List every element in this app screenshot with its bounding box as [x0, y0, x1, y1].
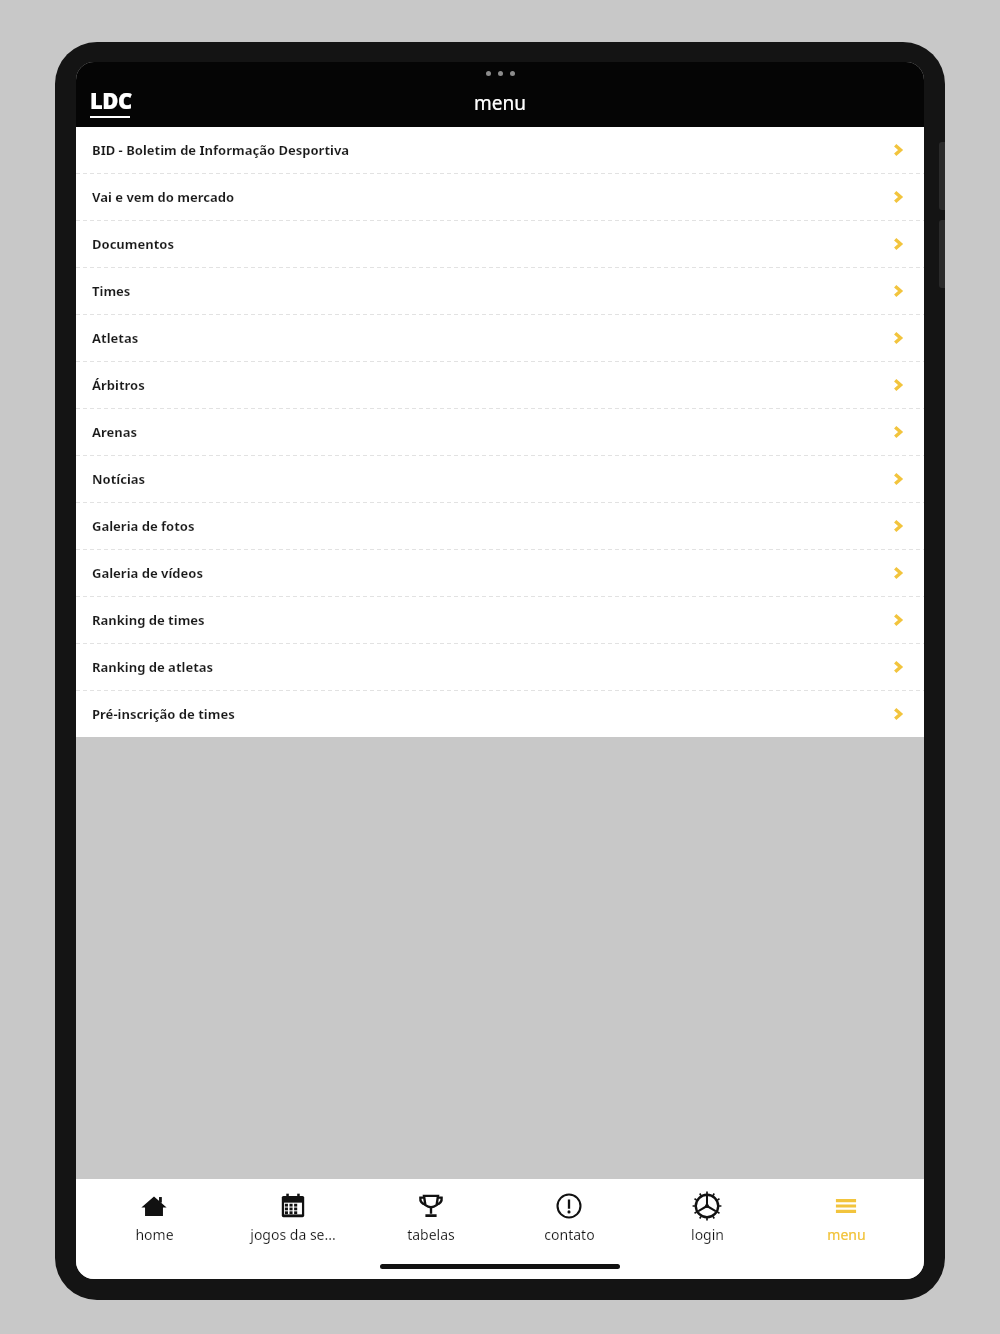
button[interactable]: Times	[76, 268, 924, 314]
button[interactable]: Árbitros	[76, 362, 924, 408]
button[interactable]: Arenas	[76, 409, 924, 455]
other: contato	[555, 1192, 583, 1220]
staticText: Ranking de atletas	[92, 658, 888, 676]
button[interactable]: Vai e vem do mercado	[76, 174, 924, 220]
staticText: menu	[474, 90, 526, 116]
other: menu	[832, 1192, 860, 1220]
button[interactable]: Atletas	[76, 315, 924, 361]
staticText: Documentos	[92, 235, 888, 253]
button[interactable]: Ranking de atletas	[76, 644, 924, 690]
other: login	[693, 1192, 721, 1220]
staticText: home	[135, 1225, 174, 1244]
other: jogos da semana	[279, 1192, 307, 1220]
staticText: Galeria de fotos	[92, 517, 888, 535]
other: home	[140, 1192, 168, 1220]
other: tabelas	[417, 1192, 445, 1220]
staticText: login	[691, 1225, 724, 1244]
staticText: jogos da se...	[250, 1225, 336, 1244]
staticText: tabelas	[407, 1225, 455, 1244]
button[interactable]: BID - Boletim de Informação Desportiva	[76, 127, 924, 173]
staticText: Atletas	[92, 329, 888, 347]
button[interactable]: Galeria de vídeos	[76, 550, 924, 596]
staticText: menu	[827, 1225, 866, 1244]
button[interactable]: jogos da semana	[233, 1187, 353, 1248]
staticText: BID - Boletim de Informação Desportiva	[92, 141, 888, 159]
staticText: Ranking de times	[92, 611, 888, 629]
button[interactable]: contato	[509, 1187, 629, 1248]
staticText: Galeria de vídeos	[92, 564, 888, 582]
button[interactable]: login	[647, 1187, 767, 1248]
button[interactable]: home	[94, 1187, 214, 1248]
button[interactable]: Notícias	[76, 456, 924, 502]
staticText: Vai e vem do mercado	[92, 188, 888, 206]
button[interactable]: Galeria de fotos	[76, 503, 924, 549]
staticText: Arenas	[92, 423, 888, 441]
staticText: Pré-inscrição de times	[92, 705, 888, 723]
staticText: Notícias	[92, 470, 888, 488]
button[interactable]: Documentos	[76, 221, 924, 267]
button[interactable]: Ranking de times	[76, 597, 924, 643]
button[interactable]: menu	[786, 1187, 906, 1248]
staticText: contato	[544, 1225, 595, 1244]
button[interactable]: Pré-inscrição de times	[76, 691, 924, 737]
button[interactable]: tabelas	[371, 1187, 491, 1248]
button[interactable]: LDC logo	[90, 85, 132, 118]
staticText: Árbitros	[92, 376, 888, 394]
staticText: Times	[92, 282, 888, 300]
staticText: LDC	[90, 85, 132, 115]
